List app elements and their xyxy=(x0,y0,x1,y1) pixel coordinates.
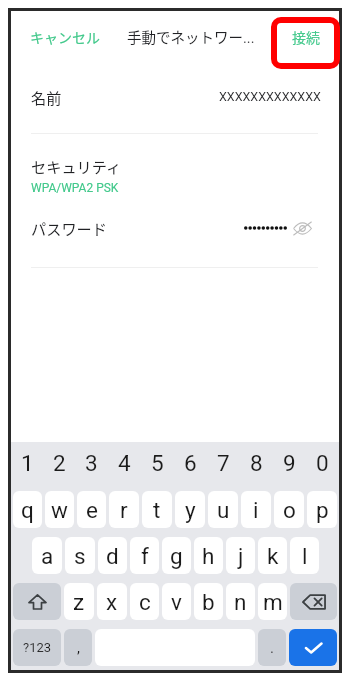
staticText: p xyxy=(316,497,329,523)
staticText: XXXXXXXXXXXXX xyxy=(219,89,321,104)
staticText: 4 xyxy=(118,450,131,476)
staticText: z xyxy=(73,589,85,615)
staticText: 名前 xyxy=(31,86,62,108)
staticText: 8 xyxy=(250,450,263,476)
staticText: 1 xyxy=(21,450,34,476)
button[interactable]: u xyxy=(208,491,238,528)
button[interactable]: 8 xyxy=(241,444,271,482)
staticText: 接続 xyxy=(292,27,320,47)
button[interactable]: 1 xyxy=(13,444,42,482)
staticText: k xyxy=(267,543,279,569)
button[interactable]: s xyxy=(65,537,95,574)
staticText: x xyxy=(106,589,118,615)
staticText: l xyxy=(302,543,308,569)
staticText: WPA/WPA2 PSK xyxy=(31,181,119,195)
staticText: . xyxy=(270,639,274,657)
staticText: v xyxy=(171,589,182,615)
button[interactable]: m xyxy=(258,583,287,620)
button[interactable]: パスワード xyxy=(11,201,339,254)
staticText: g xyxy=(170,543,183,569)
button[interactable]: q xyxy=(13,491,42,528)
staticText: ... xyxy=(243,30,255,47)
staticText: 2 xyxy=(53,450,66,476)
staticText: m xyxy=(263,589,283,615)
button[interactable]: d xyxy=(98,537,127,574)
staticText: f xyxy=(141,543,149,569)
button[interactable]: 7 xyxy=(208,444,238,482)
button[interactable]: c xyxy=(130,583,159,620)
button[interactable]: Enter xyxy=(289,629,337,666)
button[interactable]: 6 xyxy=(175,444,205,482)
button[interactable]: o xyxy=(274,491,304,528)
staticText: w xyxy=(51,497,68,523)
button[interactable]: x xyxy=(97,583,127,620)
button[interactable]: Backspace xyxy=(290,583,337,620)
button[interactable]: n xyxy=(226,583,255,620)
staticText: j xyxy=(238,543,244,569)
staticText: パスワード xyxy=(31,217,107,239)
staticText: t xyxy=(153,497,161,523)
staticText: n xyxy=(234,589,247,615)
button[interactable]: y xyxy=(175,491,205,528)
button[interactable]: j xyxy=(226,537,255,574)
staticText: u xyxy=(217,497,230,523)
button[interactable]: r xyxy=(109,491,139,528)
staticText: e xyxy=(86,497,98,523)
staticText: ?123 xyxy=(23,640,52,655)
staticText: 手動でネットワー xyxy=(127,26,243,47)
staticText: 7 xyxy=(217,450,230,476)
staticText: o xyxy=(283,497,296,523)
button[interactable]: v xyxy=(162,583,191,620)
button[interactable]: l xyxy=(290,537,319,574)
staticText: 0 xyxy=(316,450,329,476)
button[interactable]: 名前 xyxy=(11,60,339,133)
button[interactable]: 2 xyxy=(45,444,74,482)
button[interactable]: z xyxy=(64,583,94,620)
button[interactable]: . xyxy=(258,629,286,666)
button[interactable]: 0 xyxy=(307,444,337,482)
staticText: d xyxy=(106,543,119,569)
staticText: セキュリティ xyxy=(31,155,122,177)
button[interactable]: b xyxy=(194,583,223,620)
button[interactable]: h xyxy=(194,537,223,574)
button[interactable]: 3 xyxy=(77,444,106,482)
button[interactable]: ?123 xyxy=(13,629,61,666)
staticText: 5 xyxy=(151,450,164,476)
button[interactable]: t xyxy=(142,491,172,528)
button[interactable]: f xyxy=(130,537,159,574)
button[interactable]: e xyxy=(77,491,106,528)
staticText: r xyxy=(120,497,128,523)
button[interactable]: w xyxy=(45,491,74,528)
button[interactable]: パスワードを表示 xyxy=(293,219,312,237)
button[interactable]: i xyxy=(241,491,271,528)
button[interactable]: 5 xyxy=(142,444,172,482)
button[interactable]: a xyxy=(32,537,62,574)
button[interactable]: k xyxy=(258,537,287,574)
button[interactable]: p xyxy=(307,491,337,528)
staticText: b xyxy=(202,589,215,615)
staticText: a xyxy=(41,543,54,569)
button[interactable]: セキュリティ xyxy=(11,134,339,201)
button[interactable]: 9 xyxy=(274,444,304,482)
staticText: 3 xyxy=(85,450,98,476)
staticText: キャンセル xyxy=(30,27,100,47)
button[interactable]: , xyxy=(64,629,92,666)
button[interactable]: キャンセル xyxy=(11,17,119,57)
staticText: h xyxy=(202,543,215,569)
staticText: , xyxy=(77,639,80,657)
staticText: s xyxy=(74,543,86,569)
button[interactable]: g xyxy=(162,537,191,574)
button[interactable]: 接続 xyxy=(273,17,339,57)
staticText: 9 xyxy=(283,450,296,476)
button[interactable]: 4 xyxy=(109,444,139,482)
staticText: q xyxy=(21,497,34,523)
staticText: c xyxy=(139,589,151,615)
staticText: 6 xyxy=(184,450,197,476)
staticText: y xyxy=(185,497,196,523)
staticText: i xyxy=(253,497,259,523)
button[interactable]: Shift xyxy=(13,583,61,620)
